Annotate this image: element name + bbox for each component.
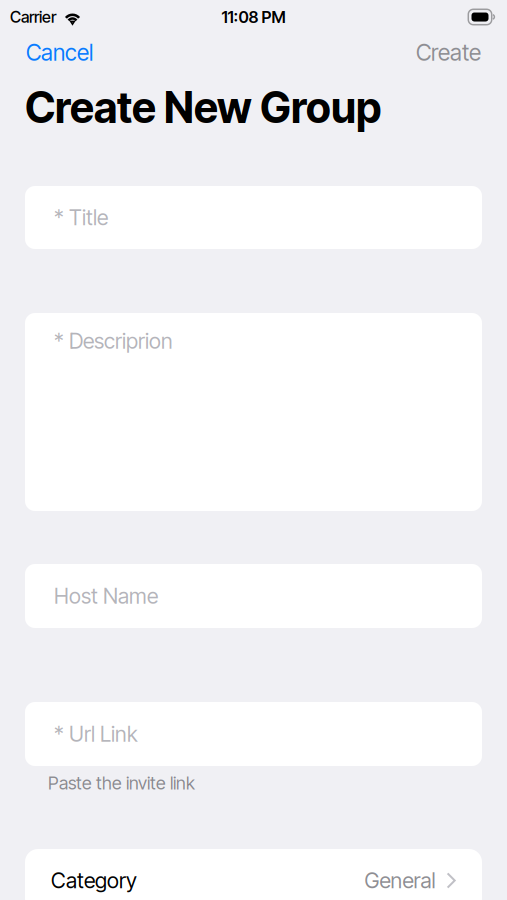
staticText: Carrier bbox=[10, 7, 56, 27]
staticText: Create New Group bbox=[25, 82, 381, 133]
staticText: * Url Link bbox=[54, 721, 138, 747]
staticText: * Title bbox=[54, 205, 108, 230]
button[interactable]: Cancel bbox=[15, 32, 104, 73]
button[interactable]: Category bbox=[25, 849, 482, 900]
staticText: Cancel bbox=[26, 39, 93, 66]
staticText: Create bbox=[416, 39, 481, 66]
staticText: Category bbox=[51, 868, 137, 893]
staticText: 11:08 PM bbox=[221, 7, 285, 27]
staticText: * Descriprion bbox=[54, 328, 173, 354]
staticText: Paste the invite link bbox=[48, 772, 195, 794]
button[interactable]: Create bbox=[405, 32, 492, 73]
staticText: General bbox=[364, 868, 435, 893]
staticText: Host Name bbox=[54, 583, 158, 609]
